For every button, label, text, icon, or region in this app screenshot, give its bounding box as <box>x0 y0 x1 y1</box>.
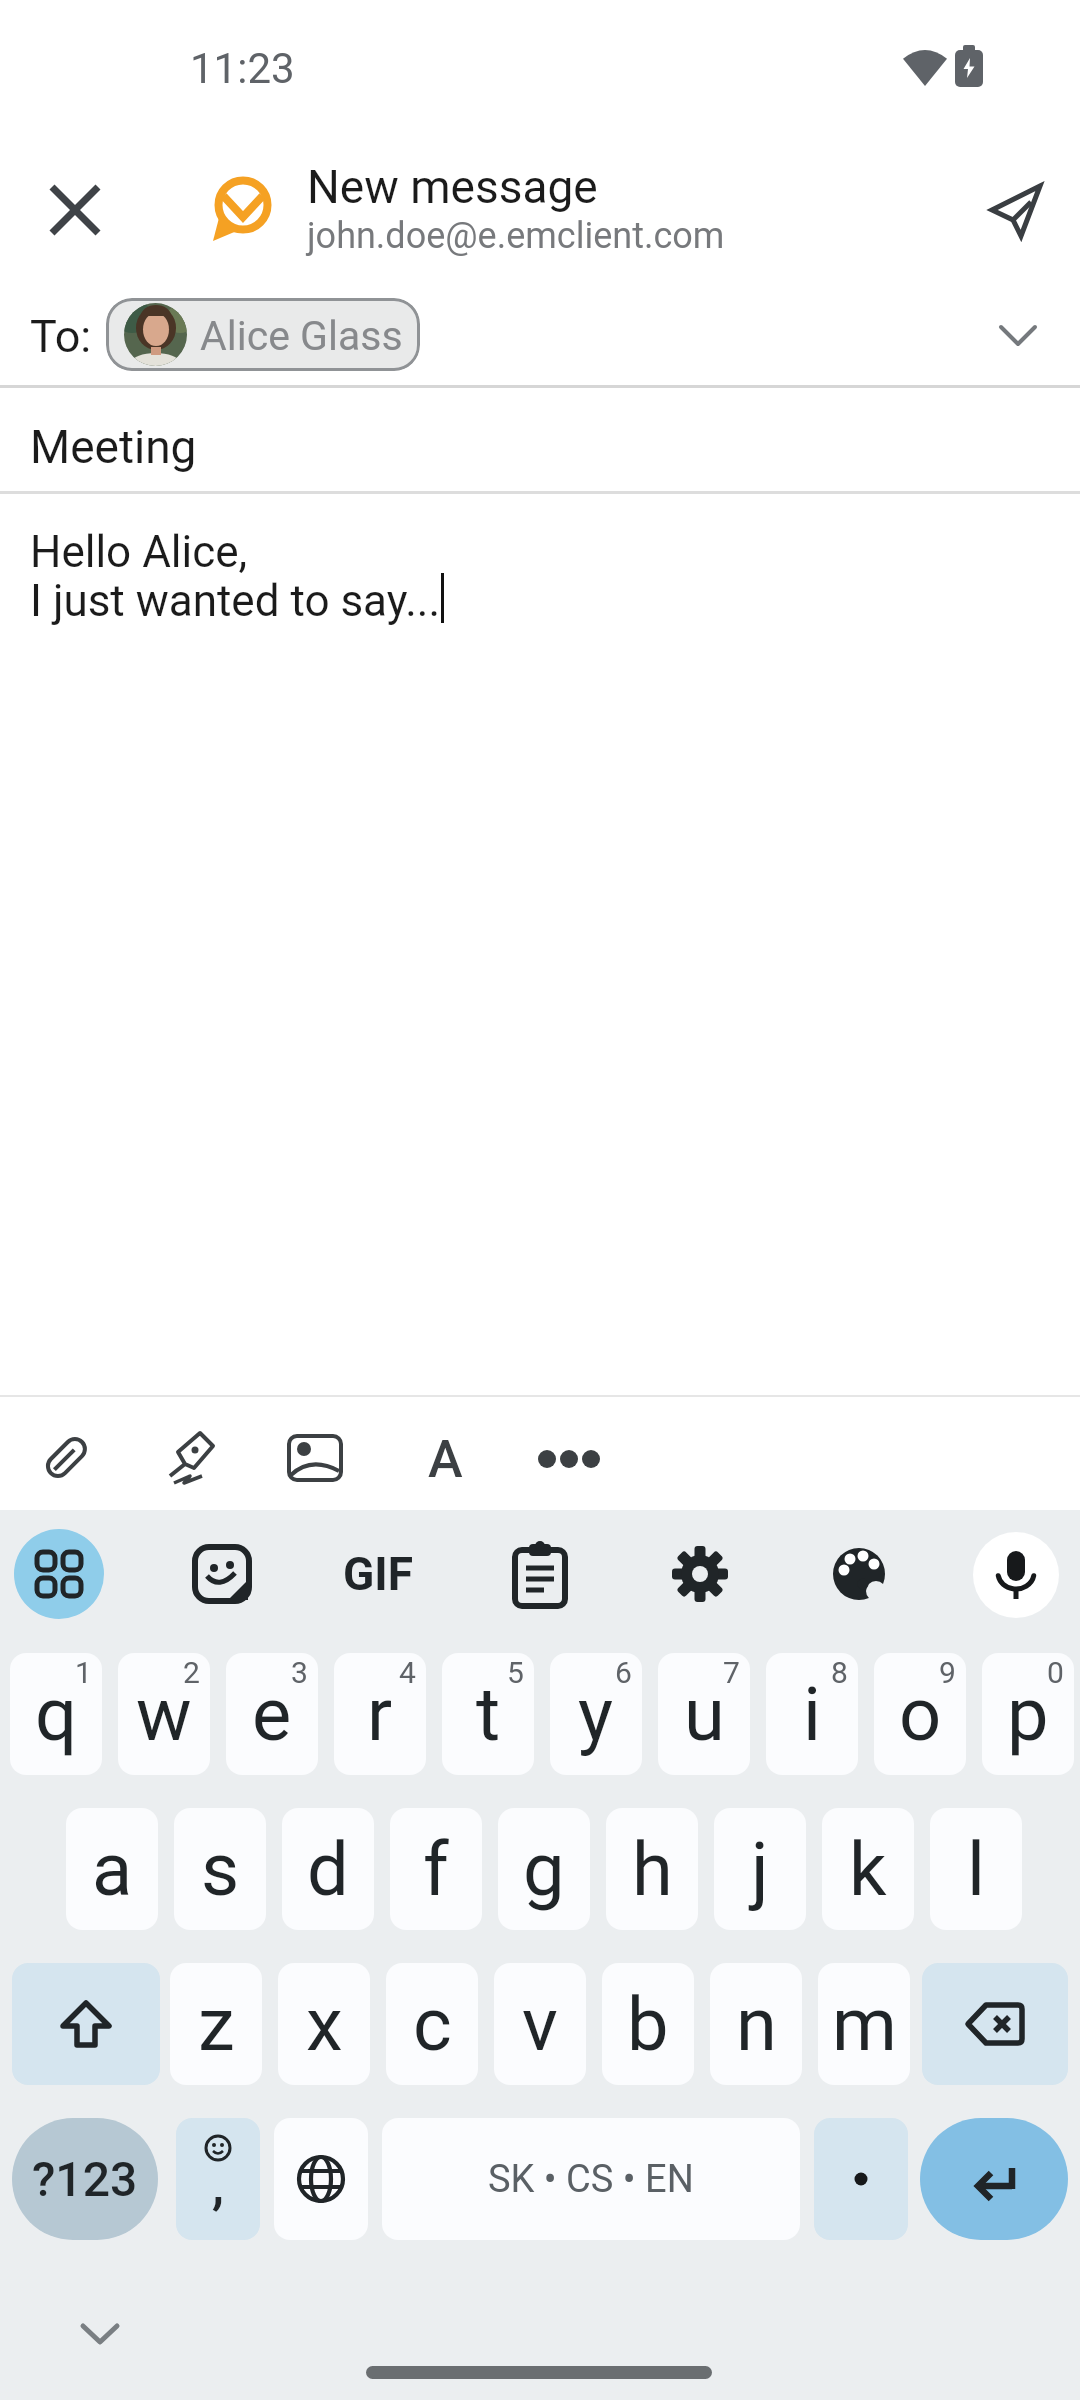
button[interactable]: i <box>766 1653 858 1775</box>
button[interactable]: p <box>982 1653 1074 1775</box>
button[interactable] <box>530 1440 606 1478</box>
staticText: j <box>751 1826 769 1913</box>
staticText: 11:23 <box>190 44 295 93</box>
staticText: d <box>307 1826 349 1913</box>
staticText: e <box>252 1671 292 1758</box>
button[interactable]: s <box>174 1808 266 1930</box>
button[interactable]: y <box>550 1653 642 1775</box>
button[interactable]: q <box>10 1653 102 1775</box>
staticText: 2 <box>183 1655 200 1690</box>
button[interactable]: k <box>822 1808 914 1930</box>
staticText: z <box>198 1981 235 2068</box>
button[interactable]: g <box>498 1808 590 1930</box>
button[interactable] <box>814 2118 908 2240</box>
button[interactable]: j <box>714 1808 806 1930</box>
staticText: n <box>736 1981 777 2068</box>
button[interactable] <box>287 1434 347 1484</box>
staticText: b <box>627 1981 669 2068</box>
staticText: k <box>849 1826 887 1913</box>
staticText: g <box>523 1826 565 1913</box>
staticText: john.doe@e.emclient.com <box>307 215 725 257</box>
button[interactable]: SK • CS • EN <box>382 2118 800 2240</box>
staticText: p <box>1007 1671 1049 1758</box>
staticText: 4 <box>399 1655 416 1690</box>
button[interactable]: m <box>818 1963 910 2085</box>
staticText: Meeting <box>30 420 197 474</box>
button[interactable]: v <box>494 1963 586 2085</box>
staticText: GIF <box>343 1547 413 1601</box>
staticText: u <box>684 1671 725 1758</box>
button[interactable]: ?123 <box>12 2118 158 2240</box>
button[interactable] <box>965 160 1061 256</box>
button[interactable] <box>973 1532 1059 1618</box>
staticText: Hello Alice, I just wanted to say... <box>30 526 441 627</box>
staticText: r <box>367 1671 393 1758</box>
button[interactable]: l <box>930 1808 1022 1930</box>
staticText: To: <box>30 310 92 363</box>
button[interactable]: c <box>386 1963 478 2085</box>
staticText: f <box>423 1826 449 1913</box>
staticText: 8 <box>831 1655 848 1690</box>
button[interactable] <box>985 310 1051 362</box>
button[interactable] <box>38 1432 92 1486</box>
button[interactable]: d <box>282 1808 374 1930</box>
staticText: SK • CS • EN <box>488 2157 694 2202</box>
staticText: 7 <box>723 1655 740 1690</box>
staticText: l <box>967 1826 985 1913</box>
staticText: m <box>832 1981 897 2068</box>
staticText: h <box>632 1826 673 1913</box>
staticText: 6 <box>615 1655 632 1690</box>
button[interactable]: n <box>710 1963 802 2085</box>
button[interactable]: b <box>602 1963 694 2085</box>
staticText: a <box>92 1826 133 1913</box>
button[interactable]: x <box>278 1963 370 2085</box>
staticText: o <box>899 1671 942 1758</box>
button[interactable]: u <box>658 1653 750 1775</box>
staticText: 1 <box>75 1655 92 1690</box>
staticText: x <box>306 1981 343 2068</box>
button[interactable] <box>70 2310 130 2360</box>
staticText: w <box>136 1671 192 1758</box>
button[interactable]: e <box>226 1653 318 1775</box>
staticText: , <box>212 2153 224 2216</box>
button[interactable]: , <box>176 2118 260 2240</box>
staticText: c <box>413 1981 452 2068</box>
button[interactable] <box>670 1544 730 1604</box>
staticText: q <box>35 1671 78 1758</box>
button[interactable] <box>160 1428 222 1490</box>
button[interactable]: r <box>334 1653 426 1775</box>
button[interactable] <box>274 2118 368 2240</box>
staticText: Alice Glass <box>200 312 403 360</box>
button[interactable]: f <box>390 1808 482 1930</box>
staticText: y <box>578 1671 614 1758</box>
button[interactable]: z <box>170 1963 262 2085</box>
button[interactable]: t <box>442 1653 534 1775</box>
button[interactable] <box>512 1542 568 1608</box>
button[interactable]: o <box>874 1653 966 1775</box>
staticText: 3 <box>291 1655 308 1690</box>
button[interactable] <box>12 1963 160 2085</box>
staticText: A <box>428 1429 463 1490</box>
button[interactable]: GIF <box>330 1540 426 1608</box>
button[interactable]: A <box>415 1425 475 1493</box>
button[interactable]: a <box>66 1808 158 1930</box>
staticText: ?123 <box>32 2151 138 2207</box>
staticText: s <box>201 1826 240 1913</box>
button[interactable] <box>35 170 115 250</box>
staticText: 5 <box>507 1655 524 1690</box>
staticText: 0 <box>1047 1655 1064 1690</box>
staticText: v <box>522 1981 558 2068</box>
button[interactable]: Alice Glass <box>106 298 420 371</box>
button[interactable] <box>830 1544 890 1604</box>
button[interactable]: w <box>118 1653 210 1775</box>
button[interactable] <box>192 1544 252 1604</box>
staticText: New message <box>307 160 598 214</box>
staticText: i <box>803 1671 821 1758</box>
staticText: 9 <box>939 1655 956 1690</box>
button[interactable]: h <box>606 1808 698 1930</box>
button[interactable] <box>922 1963 1068 2085</box>
staticText: t <box>476 1671 501 1758</box>
button[interactable] <box>14 1529 104 1619</box>
button[interactable] <box>920 2118 1068 2240</box>
